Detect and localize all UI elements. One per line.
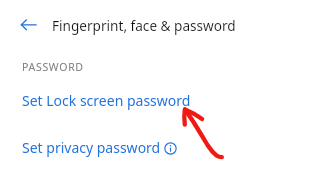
- button[interactable]: Set privacy password: [0, 133, 320, 161]
- staticText: Set privacy password: [22, 138, 161, 157]
- staticText: Fingerprint, face & password: [52, 16, 236, 35]
- staticText: Set Lock screen password: [22, 91, 191, 110]
- button[interactable]: Back: [14, 13, 38, 37]
- staticText: PASSWORD: [22, 60, 84, 74]
- button[interactable]: Set Lock screen password: [0, 86, 320, 114]
